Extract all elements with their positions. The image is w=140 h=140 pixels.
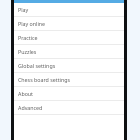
button[interactable]: Puzzles xyxy=(14,45,124,59)
staticText: Puzzles xyxy=(18,48,37,55)
staticText: Global settings xyxy=(18,62,56,69)
staticText: Advanced xyxy=(18,104,43,111)
button[interactable]: About xyxy=(14,87,124,101)
button[interactable]: Play xyxy=(14,3,124,17)
staticText: Play xyxy=(18,6,29,13)
staticText: Practice xyxy=(18,34,38,41)
button[interactable]: Play online xyxy=(14,17,124,31)
button[interactable]: Global settings xyxy=(14,59,124,73)
staticText: Chess board settings xyxy=(18,76,70,83)
button[interactable]: Practice xyxy=(14,31,124,45)
button[interactable]: Chess board settings xyxy=(14,73,124,87)
staticText: Play online xyxy=(18,20,46,27)
button[interactable]: Advanced xyxy=(14,101,124,115)
staticText: About xyxy=(18,90,34,97)
